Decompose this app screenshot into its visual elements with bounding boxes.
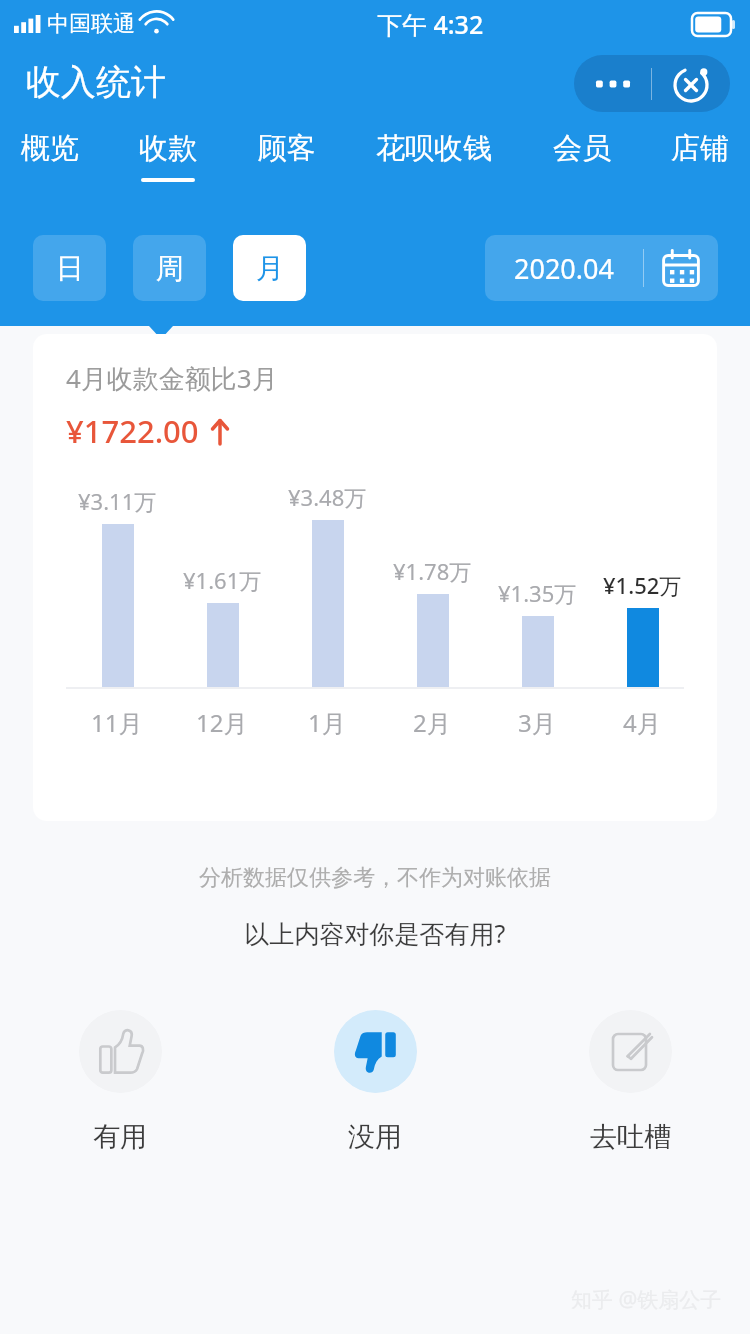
staticText: ¥1.61万 [183,565,262,595]
staticText: 概览 [21,130,79,167]
button[interactable]: 收款 [134,128,202,184]
button[interactable]: 日 [33,235,106,301]
staticText: 11月 [91,706,143,739]
staticText: ¥1.52万 [603,570,682,600]
staticText: 4月 [623,706,661,739]
button[interactable]: ¥1.35万 [488,482,586,739]
button[interactable]: 会员 [548,128,616,184]
staticText: 以上内容对你是否有用? [0,916,750,950]
staticText: 顾客 [258,130,316,167]
staticText: 周 [156,251,184,286]
button[interactable]: Close [652,55,730,112]
button[interactable]: ¥1.52万 [593,482,691,739]
staticText: ¥3.11万 [78,486,157,516]
staticText: 没用 [348,1120,402,1154]
staticText: 去吐槽 [590,1120,671,1154]
staticText: 12月 [196,706,248,739]
staticText: 1月 [308,706,346,739]
button[interactable]: ¥1.61万 [173,482,271,739]
button[interactable]: More options [574,55,651,112]
button[interactable]: 店铺 [666,128,734,184]
staticText: 分析数据仅供参考，不作为对账依据 [0,864,750,892]
button[interactable]: ¥3.11万 [68,482,166,739]
staticText: 中国联通 [47,10,135,38]
staticText: 4月收款金额比3月 [66,360,278,396]
staticText: ¥3.48万 [288,482,367,512]
staticText: ¥1.35万 [498,578,577,608]
staticText: 日 [56,251,84,286]
button[interactable]: 月 [233,235,306,301]
staticText: 收款 [139,130,197,167]
button[interactable]: 周 [133,235,206,301]
button[interactable]: 花呗收钱 [371,128,497,184]
button[interactable]: Give feedback [538,1006,722,1158]
button[interactable]: 概览 [16,128,84,184]
staticText: 收入统计 [26,60,166,104]
staticText: ¥1.78万 [393,556,472,586]
button[interactable]: 顾客 [253,128,321,184]
staticText: ¥1722.00 [66,410,199,452]
staticText: 2020.04 [514,250,614,287]
staticText: 月 [256,251,284,286]
button[interactable]: Useful [28,1006,212,1158]
staticText: 知乎 @铁扇公子 [571,1285,722,1314]
staticText: 花呗收钱 [376,130,492,167]
button[interactable]: ¥1.78万 [383,482,481,739]
staticText: 店铺 [671,130,729,167]
staticText: 会员 [553,130,611,167]
staticText: 3月 [518,706,556,739]
staticText: 2月 [413,706,451,739]
button[interactable]: Not useful [283,1006,467,1158]
staticText: 下午 4:32 [377,7,484,41]
button[interactable]: ¥3.48万 [278,482,376,739]
staticText: 有用 [93,1120,147,1154]
button[interactable]: 2020.04 [485,235,718,301]
